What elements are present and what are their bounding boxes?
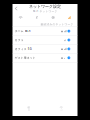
staticText: ネットワーク設定	[29, 4, 61, 9]
staticText: オフィス 5G	[15, 47, 32, 51]
staticText: i	[68, 56, 69, 59]
staticText: i	[68, 47, 69, 51]
button[interactable]: Back	[12, 4, 20, 13]
staticText: i	[68, 29, 69, 33]
staticText: ゲスト用ネット	[15, 56, 36, 59]
button[interactable]: Mobile data	[61, 13, 77, 22]
staticText: 接続済みのネットワーク	[40, 23, 73, 26]
button[interactable]: Refresh	[22, 105, 36, 112]
staticText: ホーム Wi-Fi	[15, 29, 31, 33]
button[interactable]: Wi-Fi	[12, 13, 29, 22]
button[interactable]: カフェ	[12, 36, 77, 45]
staticText: i	[68, 38, 69, 42]
button[interactable]: ゲスト用ネット	[12, 53, 77, 62]
button[interactable]: Bluetooth	[29, 13, 45, 22]
staticText: カフェ	[15, 38, 24, 42]
button[interactable]: オフィス 5G	[12, 45, 77, 53]
staticText: Wi-Fi ネットワーク	[32, 9, 57, 13]
button[interactable]: Help	[54, 105, 68, 112]
button[interactable]: Hotspot	[45, 13, 61, 22]
button[interactable]: ホーム Wi-Fi	[12, 26, 77, 36]
